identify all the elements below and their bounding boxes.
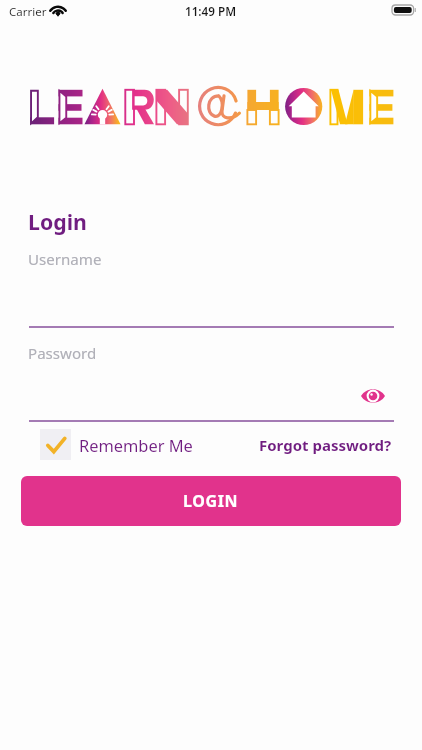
button[interactable]: LOGIN [21,476,401,526]
staticText: 11:49 PM [185,3,237,19]
button[interactable]: Show password [357,380,389,412]
staticText: Login [28,207,87,236]
staticText: Forgot password? [259,435,392,455]
staticText: Remember Me [79,434,193,456]
staticText: Carrier [9,4,47,20]
button[interactable]: Forgot password? [259,435,392,455]
staticText: LOGIN [183,490,239,512]
staticText: Username [28,249,102,270]
button[interactable]: Remember Me [40,429,193,460]
staticText: Password [28,343,97,364]
